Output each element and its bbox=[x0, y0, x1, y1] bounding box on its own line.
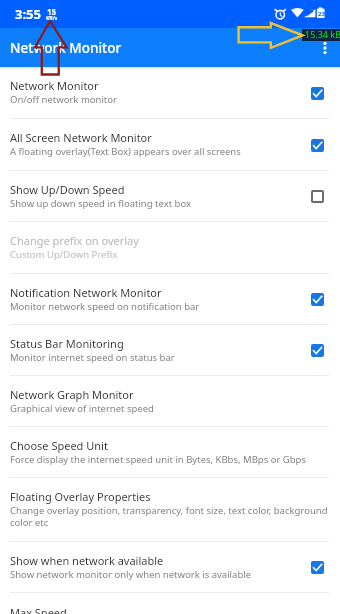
button[interactable]: More options bbox=[310, 33, 340, 63]
button[interactable]: Network Graph Monitor bbox=[0, 376, 340, 427]
staticText: Network Monitor bbox=[10, 39, 122, 57]
staticText: Graphical view of internet speed bbox=[10, 402, 154, 415]
staticText: Monitor internet speed on status bar bbox=[10, 351, 175, 364]
staticText: Force display the internet speed unit in… bbox=[10, 453, 306, 466]
staticText: 15 bbox=[47, 6, 57, 17]
staticText: Change overlay position, transparency, f… bbox=[10, 504, 328, 517]
button[interactable]: All Screen Network Monitor bbox=[311, 139, 324, 152]
staticText: color etc bbox=[10, 516, 49, 529]
staticText: On/off network monitor bbox=[10, 93, 117, 106]
staticText: Change prefix on overlay bbox=[10, 233, 139, 248]
button[interactable]: Network Monitor bbox=[0, 67, 340, 119]
button[interactable]: Choose Speed Unit bbox=[0, 427, 340, 478]
staticText: 3:55 bbox=[15, 5, 41, 23]
staticText: Network Graph Monitor bbox=[10, 387, 134, 402]
staticText: Floating Overlay Properties bbox=[10, 489, 151, 504]
button[interactable]: Status Bar Monitoring bbox=[311, 344, 324, 357]
staticText: Custom Up/Down Prefix bbox=[10, 248, 118, 261]
button[interactable]: Floating Overlay Properties bbox=[0, 478, 340, 542]
staticText: A floating overlay(Text Box) appears ove… bbox=[10, 145, 241, 158]
staticText: Monitor network speed on notification ba… bbox=[10, 300, 200, 313]
staticText: Network Monitor bbox=[10, 78, 99, 93]
staticText: Show network monitor only when network i… bbox=[10, 568, 252, 581]
button[interactable]: Network Monitor bbox=[311, 87, 324, 100]
staticText: 15.34 kB bbox=[305, 28, 340, 40]
button[interactable]: All Screen Network Monitor bbox=[0, 119, 340, 171]
button[interactable]: Change prefix on overlay bbox=[0, 222, 340, 274]
staticText: Max Speed bbox=[10, 605, 67, 614]
button[interactable]: Show when network available bbox=[0, 542, 340, 593]
button[interactable]: Max Speed bbox=[0, 593, 340, 614]
button[interactable]: Notification Network Monitor bbox=[311, 293, 324, 306]
staticText: Choose Speed Unit bbox=[10, 438, 108, 453]
button[interactable]: Show when network available bbox=[311, 561, 324, 574]
button[interactable]: Notification Network Monitor bbox=[0, 274, 340, 325]
staticText: Show when network available bbox=[10, 553, 164, 568]
staticText: Show up down speed in floating text box bbox=[10, 197, 191, 210]
staticText: Notification Network Monitor bbox=[10, 285, 162, 300]
button[interactable]: Show Up/Down Speed bbox=[311, 190, 324, 203]
button[interactable]: Status Bar Monitoring bbox=[0, 325, 340, 376]
staticText: 23 bbox=[318, 10, 325, 18]
staticText: KB/s bbox=[46, 15, 58, 22]
staticText: All Screen Network Monitor bbox=[10, 130, 152, 145]
staticText: Status Bar Monitoring bbox=[10, 336, 124, 351]
button[interactable]: Show Up/Down Speed bbox=[0, 171, 340, 222]
staticText: Show Up/Down Speed bbox=[10, 182, 125, 197]
